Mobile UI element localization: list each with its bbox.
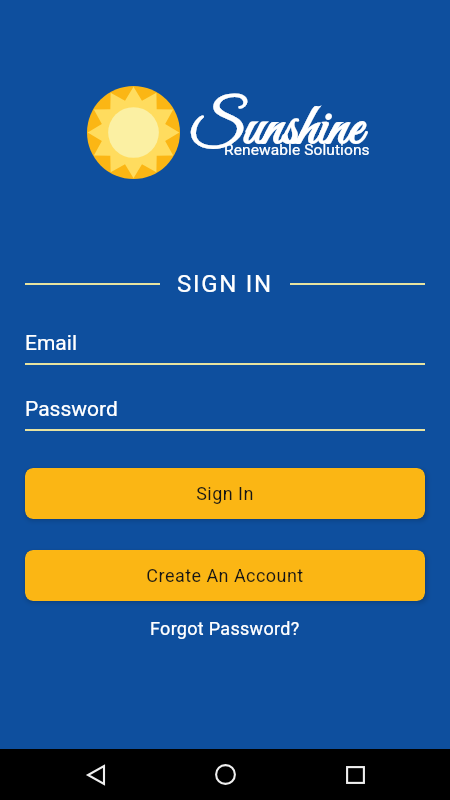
staticText: Renewable Solutions	[224, 141, 370, 159]
staticText: Email	[25, 331, 77, 356]
button[interactable]: Sign In	[25, 468, 425, 519]
staticText: Create An Account	[146, 565, 304, 586]
button[interactable]: Email	[25, 331, 425, 365]
button[interactable]: Forgot Password?	[138, 612, 312, 645]
button[interactable]: Home	[193, 749, 257, 800]
button[interactable]: Create An Account	[25, 550, 425, 601]
staticText: Sign In	[196, 483, 254, 504]
staticText: Sunshine	[189, 94, 363, 167]
button[interactable]: Back	[64, 749, 128, 800]
button[interactable]: Password	[25, 397, 425, 431]
staticText: SIGN IN	[177, 270, 273, 298]
staticText: Password	[25, 397, 118, 422]
button[interactable]: Recent apps	[323, 749, 387, 800]
